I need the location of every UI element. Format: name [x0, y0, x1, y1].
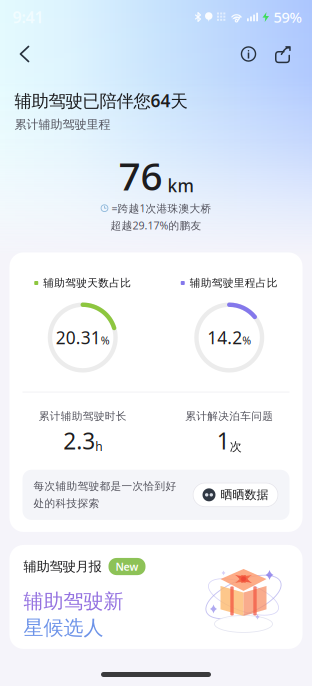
staticText: =跨越1次港珠澳大桥 — [111, 201, 211, 215]
staticText: 每次辅助驾驶都是一次恰到好 — [33, 480, 176, 493]
staticText: 累计辅助驾驶时长 — [39, 409, 127, 423]
button[interactable]: Information — [231, 37, 265, 71]
button[interactable]: 辅助驾驶月报 — [0, 545, 312, 649]
button[interactable]: Share — [265, 37, 299, 71]
staticText: km — [167, 174, 193, 197]
staticText: 累计解决泊车问题 — [185, 409, 273, 423]
staticText: 1 — [217, 426, 230, 456]
staticText: 累计辅助驾驶里程 — [14, 117, 110, 132]
staticText: 晒晒数据 — [220, 487, 268, 502]
staticText: 14.2 — [207, 326, 242, 349]
staticText: % — [242, 333, 251, 348]
staticText: 76 — [118, 150, 162, 201]
staticText: 9:41 — [12, 6, 43, 28]
staticText: h — [95, 438, 102, 454]
staticText: 辅助驾驶里程占比 — [190, 276, 278, 289]
button[interactable]: 晒晒数据 — [192, 482, 278, 507]
staticText: 20.31 — [56, 326, 101, 349]
staticText: 辅助驾驶已陪伴您64天 — [14, 89, 187, 112]
staticText: New — [115, 559, 138, 574]
staticText: 辅助驾驶月报 — [23, 558, 101, 575]
staticText: 辅助驾驶天数占比 — [43, 276, 131, 289]
staticText: 星候选人 — [23, 616, 103, 640]
staticText: 辅助驾驶新 — [23, 589, 123, 614]
staticText: 59% — [273, 7, 301, 27]
staticText: 2.3 — [63, 426, 95, 456]
staticText: 次 — [230, 439, 242, 454]
button[interactable]: Back — [6, 36, 42, 72]
staticText: 处的科技探索 — [33, 497, 99, 510]
staticText: 超越29.17%的鹏友 — [110, 218, 201, 232]
staticText: % — [101, 333, 110, 348]
